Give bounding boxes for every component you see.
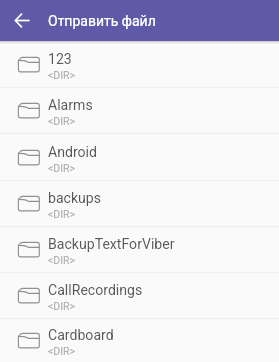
button[interactable]: Cardboard	[0, 319, 279, 362]
staticText: CallRecordings	[48, 282, 143, 299]
button[interactable]: 123	[0, 42, 279, 88]
staticText: Alarms	[48, 97, 93, 114]
staticText: Android	[48, 144, 97, 161]
staticText: BackupTextForViber	[48, 236, 175, 253]
button[interactable]: CallRecordings	[0, 273, 279, 319]
button[interactable]: Android	[0, 134, 279, 181]
staticText: <DIR>	[48, 69, 76, 81]
button[interactable]: backups	[0, 181, 279, 227]
staticText: <DIR>	[48, 162, 76, 174]
staticText: Cardboard	[48, 327, 114, 344]
button[interactable]: Back	[9, 8, 35, 34]
button[interactable]: Alarms	[0, 88, 279, 134]
staticText: Отправить файл	[48, 13, 156, 29]
staticText: backups	[48, 190, 102, 207]
staticText: <DIR>	[48, 254, 76, 266]
staticText: 123	[48, 51, 72, 68]
button[interactable]: BackupTextForViber	[0, 227, 279, 273]
staticText: <DIR>	[48, 345, 76, 357]
staticText: <DIR>	[48, 300, 76, 312]
staticText: <DIR>	[48, 208, 76, 220]
staticText: <DIR>	[48, 115, 76, 127]
